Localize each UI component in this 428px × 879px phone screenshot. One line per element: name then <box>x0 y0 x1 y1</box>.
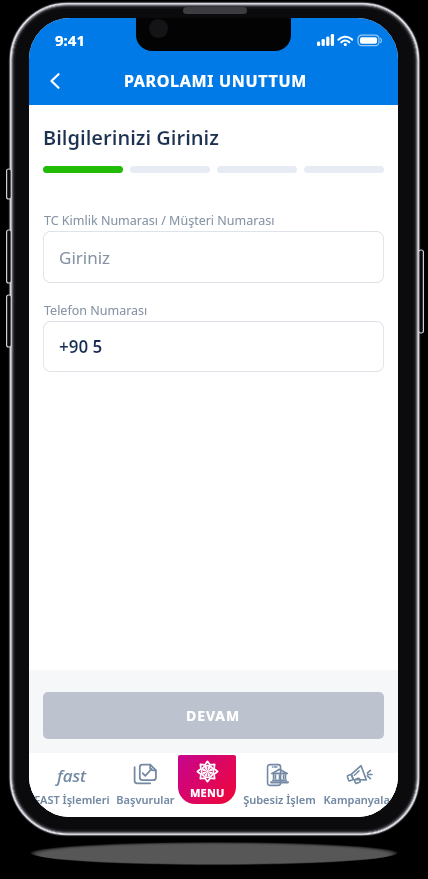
button[interactable]: +90 5 <box>43 321 384 372</box>
button[interactable]: Kampanyalar <box>304 753 398 817</box>
staticText: Bilgilerinizi Giriniz <box>43 124 219 151</box>
button[interactable]: Menu <box>178 755 236 804</box>
staticText: TC Kimlik Numarası / Müşteri Numarası <box>44 212 275 229</box>
staticText: fast <box>57 764 87 787</box>
staticText: FAST İşlemleri <box>34 792 110 807</box>
button[interactable]: fast <box>29 753 127 817</box>
staticText: 9:41 <box>55 30 85 50</box>
button[interactable]: Şubesiz İşlem <box>224 753 334 817</box>
staticText: MENU <box>190 785 225 800</box>
button[interactable]: DEVAM <box>43 692 384 739</box>
button[interactable]: Başvurular <box>90 753 200 817</box>
staticText: Giriniz <box>59 246 111 269</box>
button[interactable]: Giriniz <box>43 231 384 283</box>
staticText: Telefon Numarası <box>44 302 148 319</box>
staticText: DEVAM <box>186 706 241 725</box>
staticText: Kampanyalar <box>323 792 395 807</box>
staticText: Başvurular <box>116 792 175 807</box>
button[interactable]: Back <box>38 64 72 98</box>
staticText: PAROLAMI UNUTTUM <box>31 70 398 92</box>
staticText: Şubesiz İşlem <box>243 792 316 807</box>
staticText: +90 5 <box>59 335 103 358</box>
